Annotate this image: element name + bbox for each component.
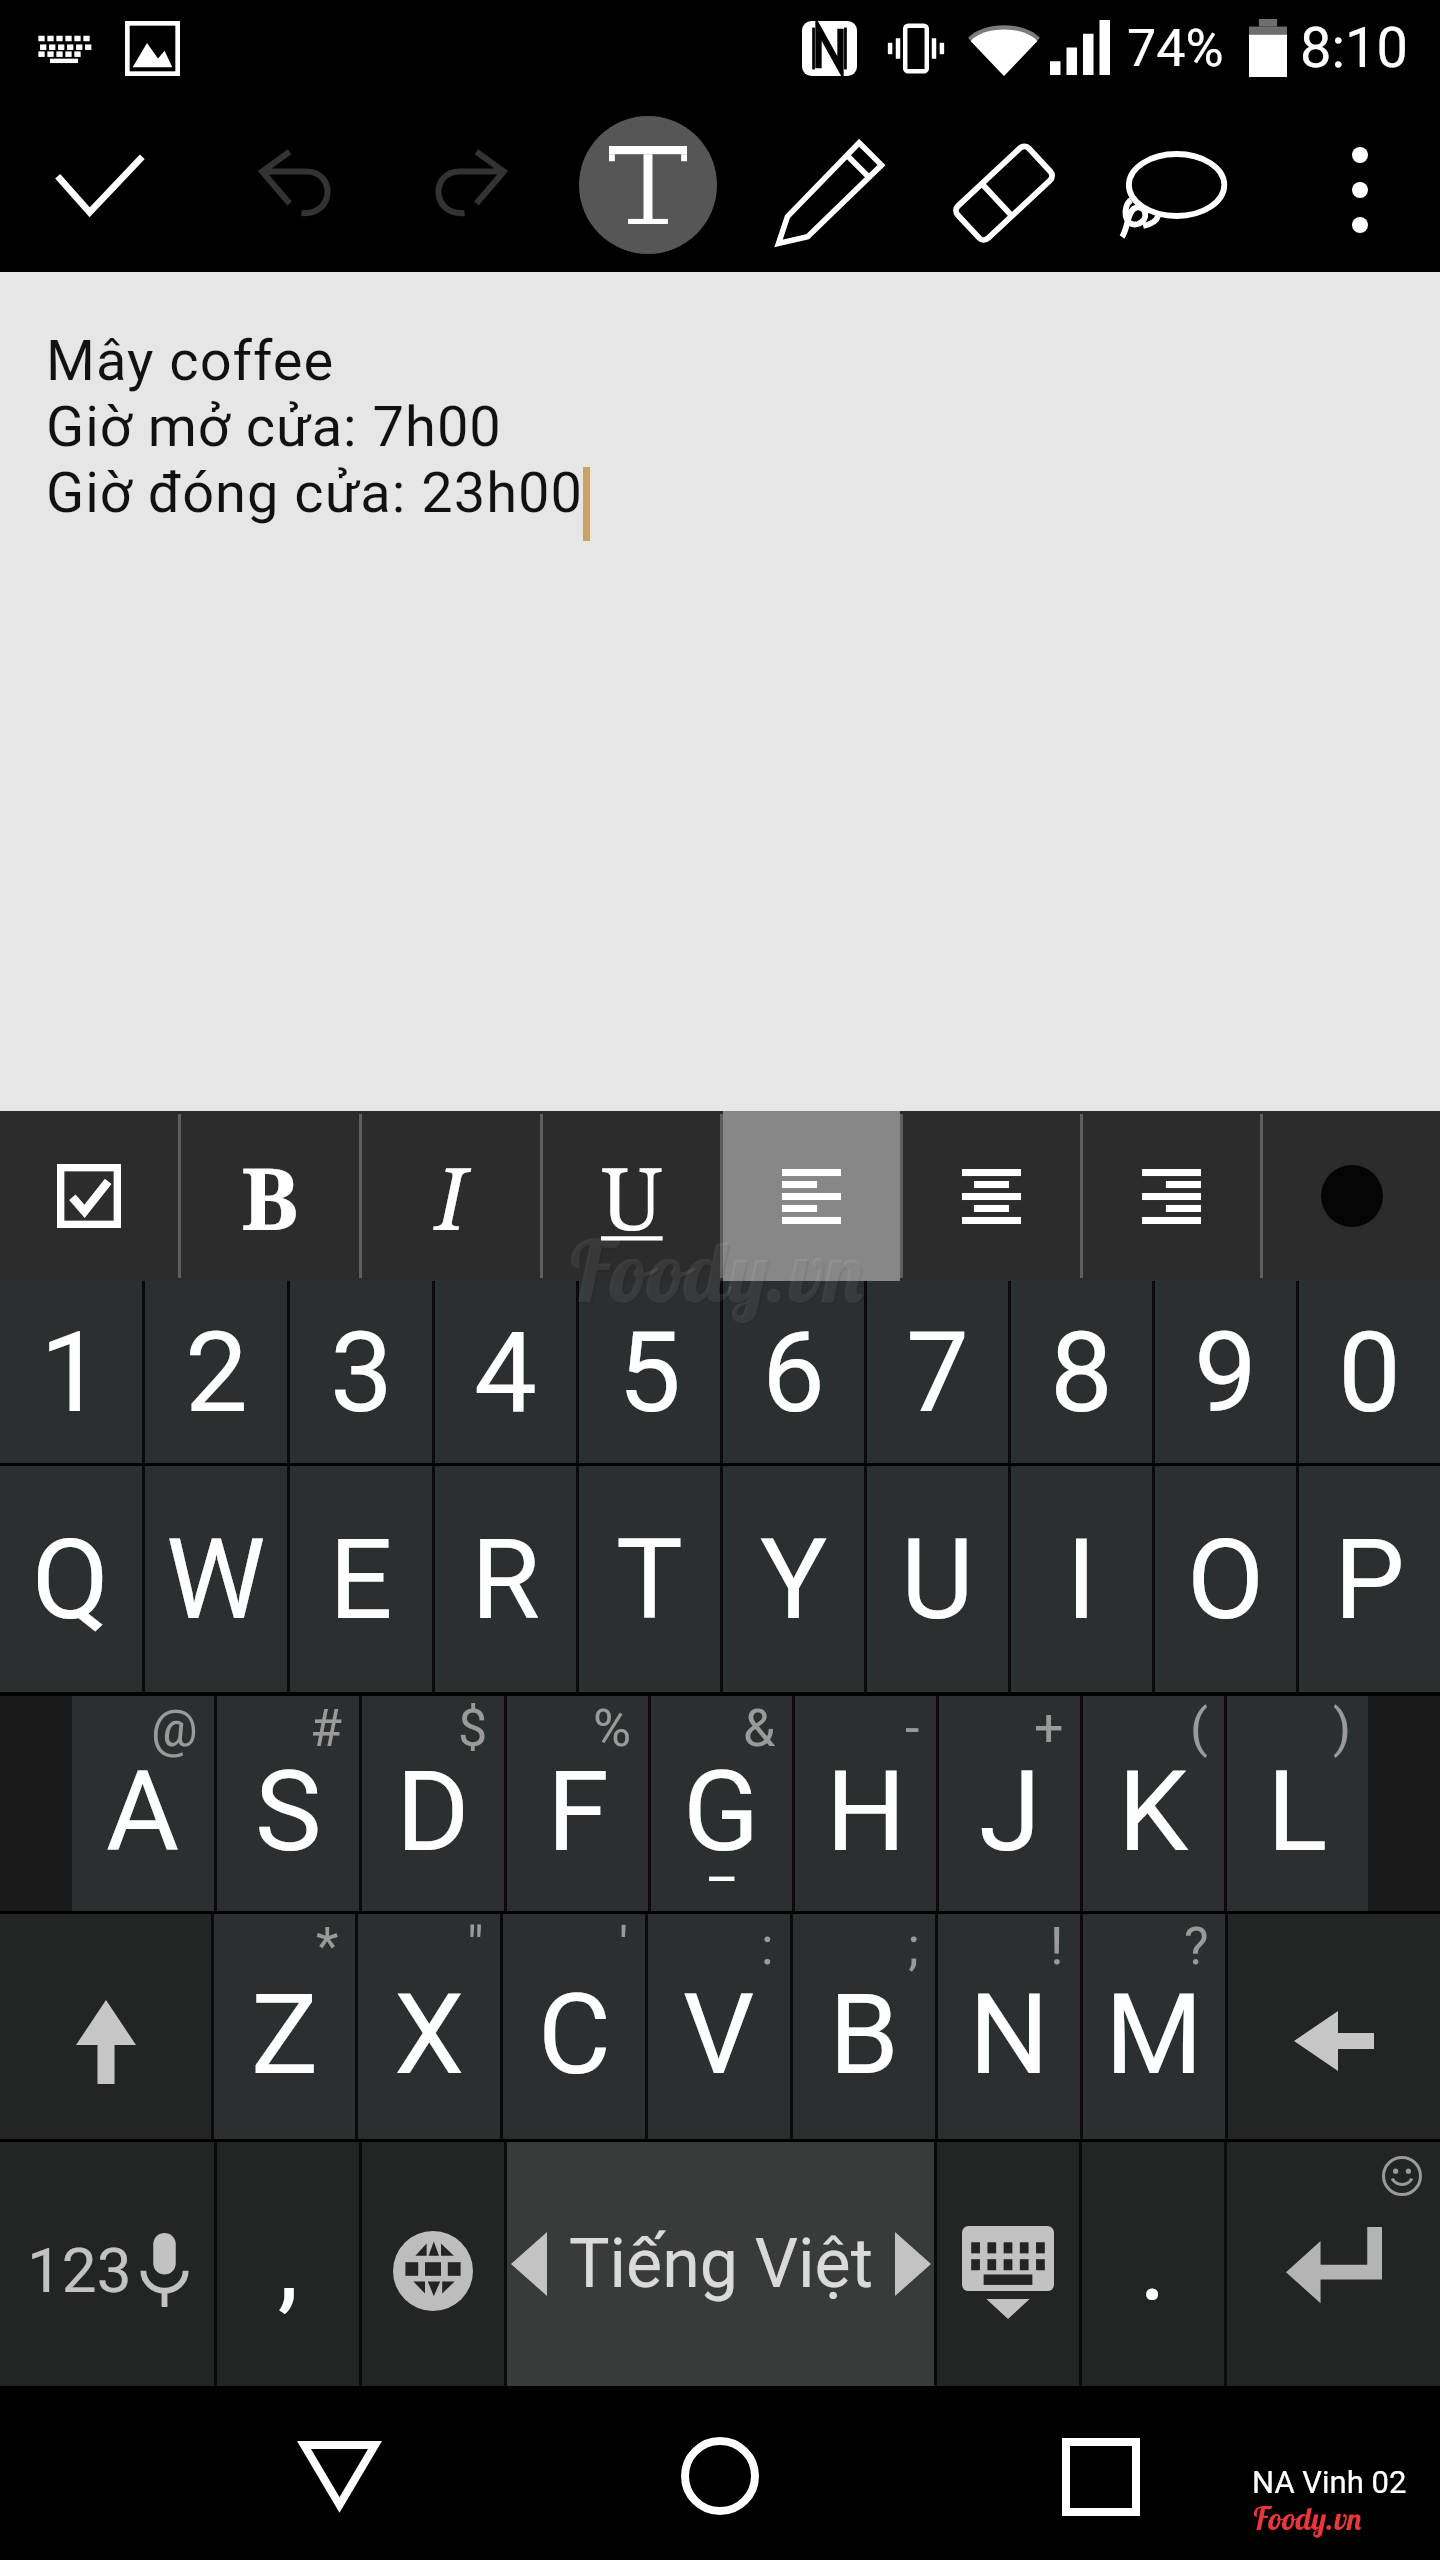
button[interactable]: 0	[1299, 1281, 1440, 1463]
staticText: 2	[185, 1307, 248, 1438]
button[interactable]: ;	[793, 1914, 935, 2139]
staticText: %	[593, 1698, 632, 1759]
button[interactable]: Back	[264, 2392, 414, 2552]
staticText: Tiếng Việt	[569, 2224, 873, 2304]
button[interactable]: @	[72, 1696, 214, 1911]
button[interactable]: Pen	[754, 108, 906, 272]
button[interactable]: Shift	[0, 1914, 211, 2139]
staticText: NA Vinh 02	[1252, 2464, 1407, 2500]
button[interactable]: More options	[1300, 128, 1420, 252]
button[interactable]: Align center	[903, 1111, 1080, 1281]
staticText: @	[151, 1698, 198, 1759]
staticText: 8	[1050, 1307, 1113, 1438]
staticText: #	[310, 1698, 343, 1759]
button[interactable]: R	[435, 1466, 576, 1692]
button[interactable]: :	[648, 1914, 790, 2139]
staticText: F	[547, 1746, 609, 1877]
button[interactable]: Text colour	[1263, 1111, 1440, 1281]
button[interactable]: "	[358, 1914, 500, 2139]
staticText: _	[709, 1825, 735, 1891]
button[interactable]: Eraser	[924, 108, 1080, 272]
button[interactable]: 1	[0, 1281, 142, 1463]
button[interactable]: &	[651, 1696, 792, 1911]
staticText: 6	[762, 1307, 825, 1438]
button[interactable]: I	[1011, 1466, 1152, 1692]
button[interactable]: 4	[435, 1281, 576, 1463]
button[interactable]: (	[1083, 1696, 1224, 1911]
staticText: M	[1105, 1969, 1203, 2100]
button[interactable]: Numbers and voice input	[0, 2142, 214, 2386]
button[interactable]: Space, Tiếng Việt	[507, 2142, 934, 2386]
staticText: O	[1187, 1514, 1265, 1645]
staticText: ;	[908, 1916, 919, 1977]
button[interactable]: '	[503, 1914, 645, 2139]
button[interactable]: 3	[290, 1281, 432, 1463]
button[interactable]: Recent apps	[1026, 2392, 1176, 2552]
button[interactable]: Q	[0, 1466, 142, 1692]
staticText: Q	[32, 1514, 110, 1645]
button[interactable]: Hide keyboard	[937, 2142, 1079, 2386]
button[interactable]: %	[507, 1696, 648, 1911]
button[interactable]: B	[181, 1111, 359, 1281]
staticText: U	[601, 1138, 663, 1255]
button[interactable]: 5	[579, 1281, 720, 1463]
button[interactable]: P	[1299, 1466, 1440, 1692]
button[interactable]: Change language	[362, 2142, 504, 2386]
button[interactable]: $	[362, 1696, 504, 1911]
button[interactable]: 6	[723, 1281, 864, 1463]
button[interactable]: Y	[723, 1466, 864, 1692]
button[interactable]: .	[1082, 2142, 1224, 2386]
button[interactable]: Align right	[1083, 1111, 1260, 1281]
staticText: Mây coffee	[46, 328, 335, 394]
button[interactable]: 8	[1011, 1281, 1152, 1463]
button[interactable]: )	[1227, 1696, 1368, 1911]
staticText: I	[435, 1138, 467, 1255]
button[interactable]: Home	[645, 2392, 795, 2552]
button[interactable]: +	[939, 1696, 1080, 1911]
staticText: E	[329, 1514, 393, 1645]
staticText: 1	[40, 1307, 103, 1438]
staticText: 3	[330, 1307, 393, 1438]
staticText: 0	[1338, 1307, 1401, 1438]
button[interactable]: Align left	[723, 1111, 900, 1281]
button[interactable]: ,	[217, 2142, 359, 2386]
button[interactable]: Undo	[240, 108, 354, 272]
staticText: $	[458, 1698, 488, 1759]
button[interactable]: U	[867, 1466, 1008, 1692]
button[interactable]: I	[362, 1111, 540, 1281]
button[interactable]: Lasso select	[1102, 108, 1248, 272]
staticText: Y	[760, 1514, 828, 1645]
staticText: I	[1066, 1514, 1097, 1645]
button[interactable]: 2	[145, 1281, 287, 1463]
staticText: K	[1118, 1746, 1189, 1877]
staticText: Foody.vn	[568, 1220, 869, 1325]
button[interactable]: #	[217, 1696, 359, 1911]
button[interactable]: Checklist	[0, 1111, 178, 1281]
button[interactable]: ?	[1083, 1914, 1225, 2139]
button[interactable]: -	[795, 1696, 936, 1911]
staticText: )	[1333, 1698, 1352, 1759]
staticText: 74%	[1127, 18, 1224, 79]
staticText: &	[743, 1698, 776, 1759]
button[interactable]: Backspace	[1228, 1914, 1440, 2139]
staticText: !	[1050, 1916, 1064, 1977]
staticText: C	[538, 1969, 611, 2100]
staticText: -	[905, 1698, 920, 1759]
staticText: 9	[1194, 1307, 1257, 1438]
button[interactable]: !	[938, 1914, 1080, 2139]
button[interactable]: Enter	[1227, 2142, 1440, 2386]
button[interactable]: Done	[35, 108, 165, 272]
button[interactable]: Redo	[412, 108, 526, 272]
button[interactable]: *	[214, 1914, 355, 2139]
button[interactable]: T	[579, 1466, 720, 1692]
staticText: T	[616, 1514, 683, 1645]
button[interactable]: O	[1155, 1466, 1296, 1692]
staticText: P	[1334, 1514, 1405, 1645]
button[interactable]: E	[290, 1466, 432, 1692]
button[interactable]: 9	[1155, 1281, 1296, 1463]
button[interactable]: U	[543, 1111, 720, 1281]
button[interactable]: Text tool	[579, 116, 717, 254]
button[interactable]: W	[145, 1466, 287, 1692]
staticText: R	[471, 1514, 541, 1645]
button[interactable]: 7	[867, 1281, 1008, 1463]
